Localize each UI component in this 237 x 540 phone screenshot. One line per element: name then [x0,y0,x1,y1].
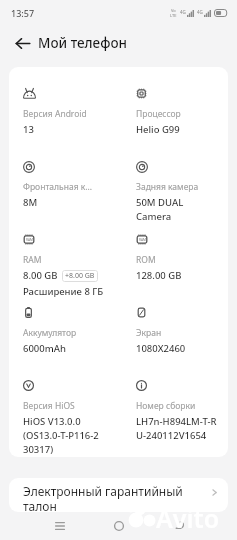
staticText: 8.00 GB [23,269,58,282]
staticText: LH7n-H894LM-T-R U-240112V1654 [136,415,217,442]
staticText: Фронтальная к... [23,181,93,193]
staticText: LTE [170,13,177,18]
staticText: Экран [136,327,162,339]
staticText: 128.00 GB [136,269,182,282]
staticText: Электронный гарантийный талон [23,483,201,512]
staticText: Версия Android [23,108,87,120]
staticText: Задняя камера [136,181,199,193]
staticText: 50M DUAL Camera [136,196,184,223]
button[interactable]: Электронный гарантийный талон [9,478,228,512]
staticText: Мой телефон [38,34,127,52]
staticText: Процессор [136,108,181,120]
staticText: +8.00 GB [65,271,95,281]
staticText: 1080X2460 [136,342,186,355]
staticText: Расширение 8 ГБ [23,285,104,298]
staticText: RAM [26,238,33,242]
staticText: Vo [171,8,176,13]
staticText: 4G [197,9,203,15]
staticText: 13 [23,123,34,136]
staticText: Аккумулятор [23,327,77,339]
staticText: 6000mAh [23,342,66,355]
button[interactable]: Back [10,30,36,56]
staticText: Avito [156,501,220,535]
staticText: ROM [136,254,156,266]
staticText: 13:57 [11,7,35,19]
staticText: Helio G99 [136,123,180,136]
staticText: RAM [23,254,42,266]
button[interactable]: Home [107,514,131,538]
staticText: 8M [23,196,38,209]
staticText: 4G [180,9,186,15]
button[interactable]: Recents [48,514,72,538]
staticText: Версия HiOS [23,400,75,412]
staticText: Номер сборки [136,400,196,412]
button[interactable]: Back [168,514,192,538]
staticText: RAM [139,238,146,242]
staticText: HiOS V13.0.0 (OS13.0-T-P116-2 30317) [23,415,99,456]
